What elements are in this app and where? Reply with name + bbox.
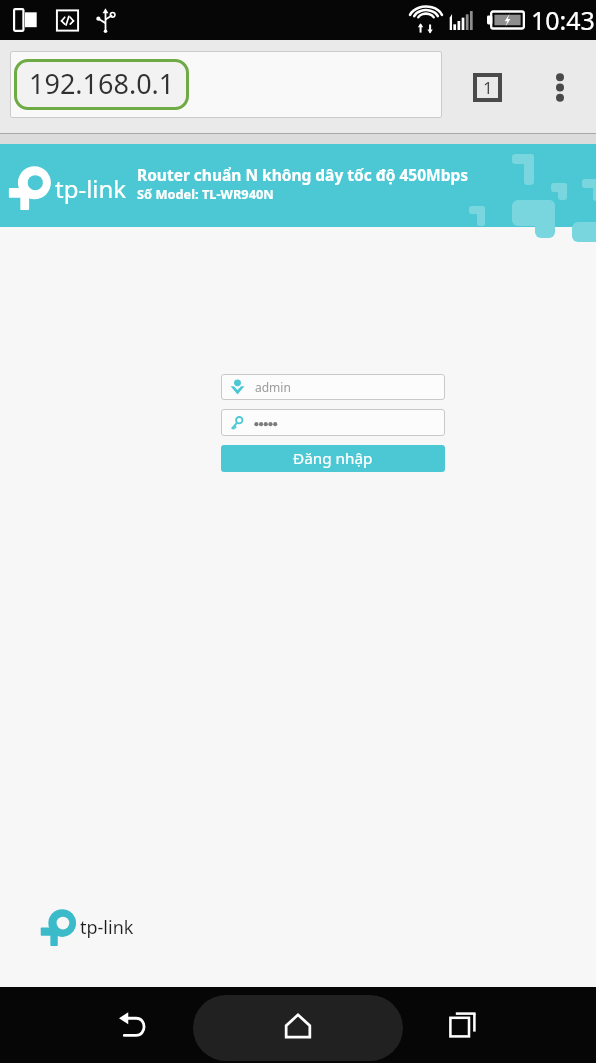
staticText: 192.168.0.1 [29,65,175,102]
staticText: 1 [483,76,493,99]
staticText: tp-link [55,172,127,205]
staticText: Số Model: TL-WR940N [137,185,274,202]
button[interactable]: Tabs [463,63,511,111]
button[interactable]: Đăng nhập [221,445,445,472]
button[interactable]: Back [101,993,165,1057]
staticText: tp-link [80,915,134,940]
button[interactable]: Recent apps [431,993,495,1057]
button[interactable]: Home [266,993,330,1057]
button[interactable]: admin [221,374,445,400]
button[interactable]: 192.168.0.1 [10,51,442,118]
staticText: admin [255,379,291,395]
button[interactable]: More options [538,65,582,109]
staticText: Đăng nhập [293,448,373,469]
staticText: Router chuẩn N không dây tốc độ 450Mbps [137,164,469,185]
button[interactable] [221,409,445,436]
staticText: 10:43 [531,3,595,37]
